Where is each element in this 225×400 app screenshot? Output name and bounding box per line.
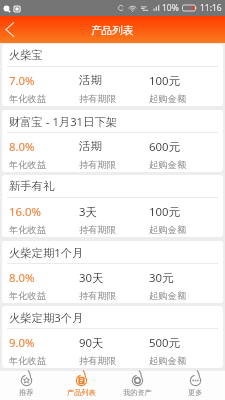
staticText: 年化收益 [9, 93, 47, 105]
staticText: 9.0% [9, 335, 35, 351]
staticText: 我的资产 [123, 388, 152, 397]
staticText: 起购金额 [149, 355, 187, 367]
staticText: 持有期限 [79, 290, 117, 302]
staticText: 10% [162, 2, 179, 14]
staticText: 推荐 [19, 388, 34, 397]
staticText: 年化收益 [9, 224, 47, 236]
staticText: 3天 [79, 204, 97, 220]
staticText: 8.0% [9, 139, 35, 155]
staticText: 新手有礼 [9, 179, 55, 193]
staticText: 600元 [149, 139, 180, 155]
staticText: 起购金额 [149, 159, 187, 171]
staticText: 产品列表 [91, 24, 134, 37]
button[interactable]: Back [0, 16, 22, 43]
button[interactable]: 推荐 [0, 371, 53, 400]
staticText: 100元 [149, 204, 180, 220]
staticText: 起购金额 [149, 290, 187, 302]
staticText: 30天 [79, 270, 104, 286]
staticText: 7.0% [9, 73, 35, 89]
staticText: 年化收益 [9, 290, 47, 302]
staticText: 火柴定期3个月 [9, 310, 84, 325]
button[interactable]: 火柴定期3个月 [2, 306, 223, 368]
staticText: 100元 [149, 73, 180, 89]
staticText: 产品列表 [67, 388, 96, 397]
staticText: 年化收益 [9, 355, 47, 367]
staticText: 16.0% [9, 204, 42, 220]
staticText: 90天 [79, 335, 104, 351]
staticText: 500元 [149, 335, 180, 351]
staticText: 年化收益 [9, 159, 47, 171]
button[interactable]: 火柴宝 [2, 44, 223, 106]
staticText: 活期 [79, 139, 102, 153]
button[interactable]: 新手有礼 [2, 175, 223, 237]
staticText: 持有期限 [79, 93, 117, 105]
staticText: 活期 [79, 73, 102, 87]
staticText: 起购金额 [149, 93, 187, 105]
staticText: 起购金额 [149, 224, 187, 236]
staticText: 火柴定期1个月 [9, 245, 84, 260]
staticText: 更多 [188, 388, 203, 397]
staticText: 11:16 [200, 2, 222, 14]
button[interactable]: 火柴定期1个月 [2, 241, 223, 303]
staticText: 30元 [149, 270, 174, 286]
button[interactable]: 产品列表 [53, 371, 110, 400]
button[interactable]: 更多 [165, 371, 225, 400]
button[interactable]: 财富宝 - 1月31日下架 [2, 110, 223, 172]
staticText: 火柴宝 [9, 48, 43, 62]
staticText: 持有期限 [79, 355, 117, 367]
staticText: 持有期限 [79, 159, 117, 171]
button[interactable]: 我的资产 [110, 371, 165, 400]
staticText: 财富宝 - 1月31日下架 [9, 114, 117, 129]
staticText: 8.0% [9, 270, 35, 286]
staticText: 持有期限 [79, 224, 117, 236]
